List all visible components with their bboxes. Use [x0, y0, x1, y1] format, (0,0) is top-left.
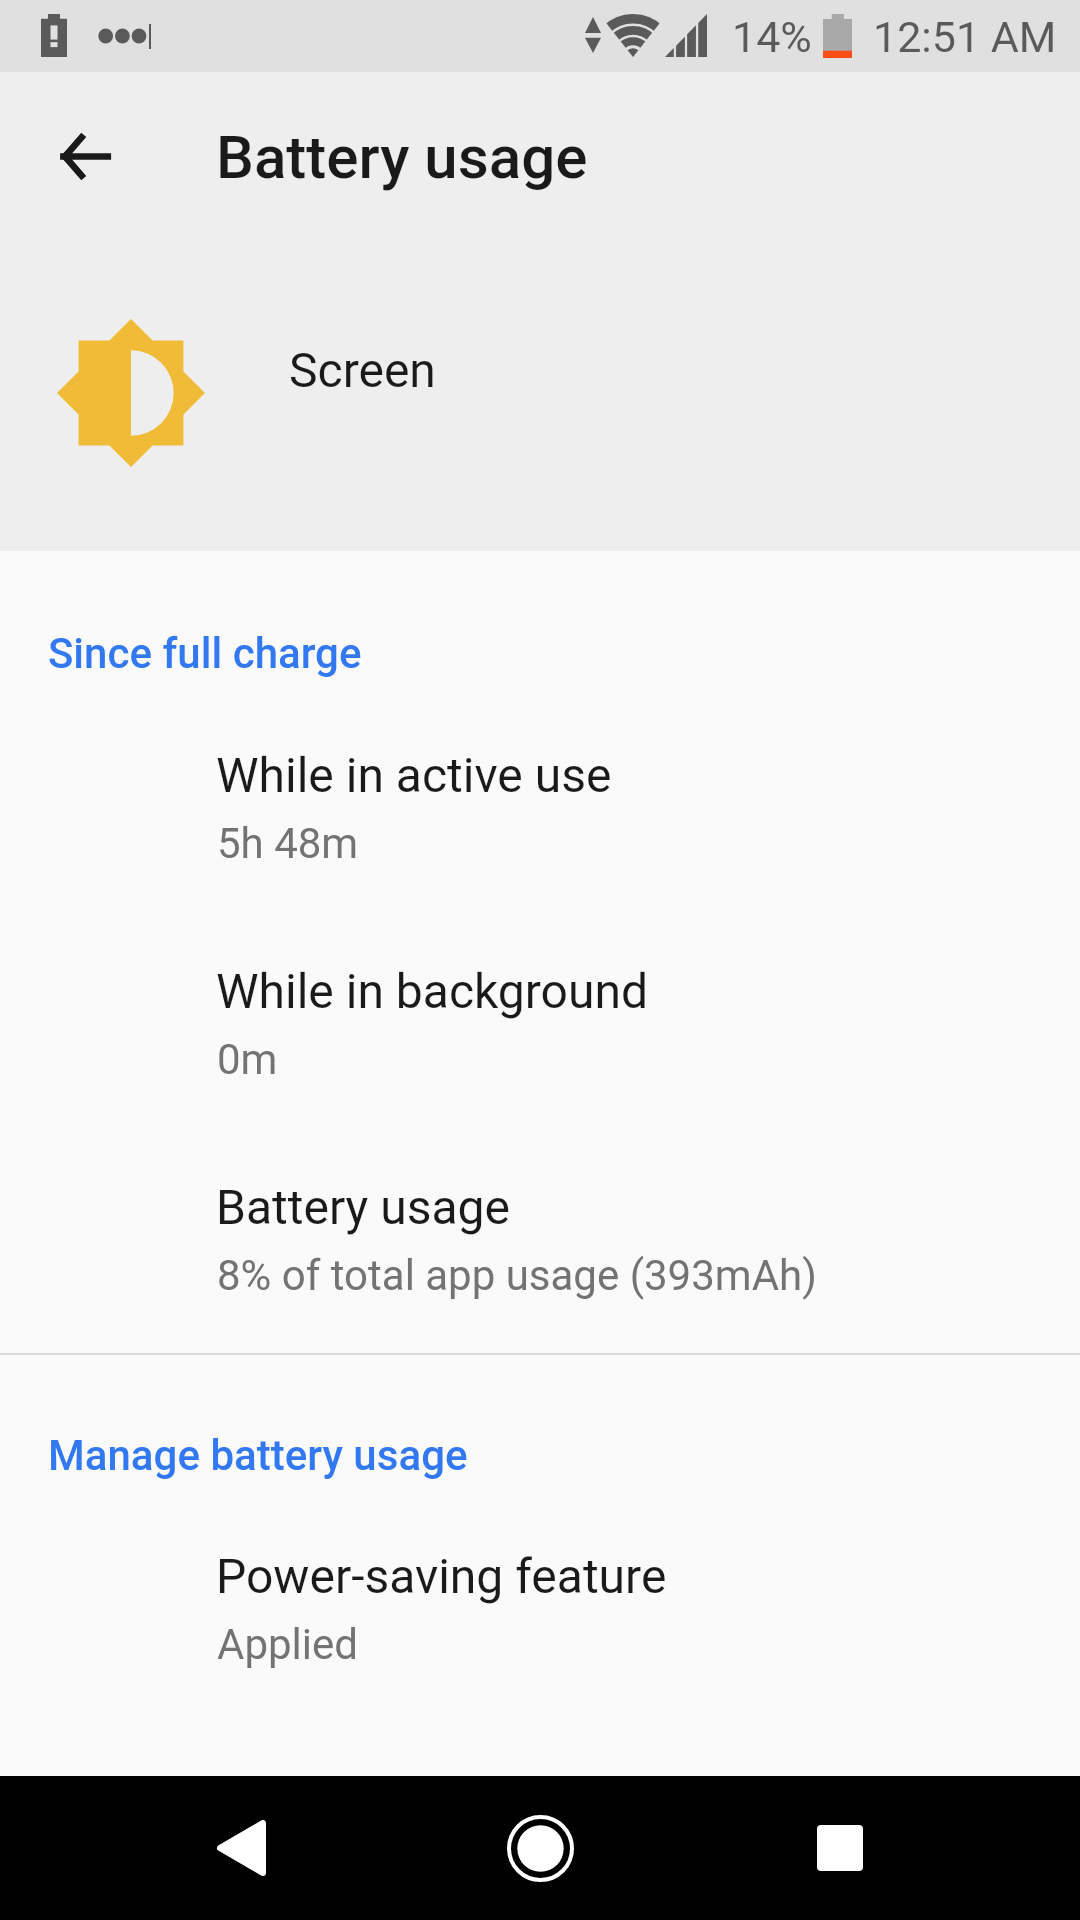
button[interactable]: Back [121, 1776, 361, 1920]
button[interactable]: Battery usage [0, 1139, 1080, 1339]
button[interactable]: Manage battery usage [0, 1388, 1080, 1492]
button[interactable]: Navigate up [28, 100, 140, 212]
staticText: 14% [732, 12, 812, 62]
staticText: Since full charge [48, 629, 362, 678]
button[interactable]: While in active use [0, 707, 1080, 907]
button[interactable]: Recent apps [720, 1776, 960, 1920]
staticText: Screen [289, 342, 436, 398]
button[interactable]: While in background [0, 923, 1080, 1123]
staticText: 5h 48m [217, 819, 359, 868]
staticText: 0m [217, 1035, 278, 1084]
staticText: Battery usage [216, 122, 588, 192]
staticText: 12:51 AM [873, 12, 1057, 62]
button[interactable]: Home [420, 1776, 660, 1920]
button[interactable]: Since full charge [0, 586, 1080, 690]
staticText: 8% of total app usage (393mAh) [217, 1251, 817, 1300]
staticText: Manage battery usage [48, 1431, 468, 1480]
staticText: Applied [217, 1620, 358, 1669]
staticText: Power-saving feature [216, 1548, 667, 1604]
button[interactable]: Power-saving feature [0, 1508, 1080, 1708]
staticText: While in background [216, 963, 649, 1019]
staticText: Battery usage [216, 1179, 510, 1235]
staticText: While in active use [216, 747, 612, 803]
